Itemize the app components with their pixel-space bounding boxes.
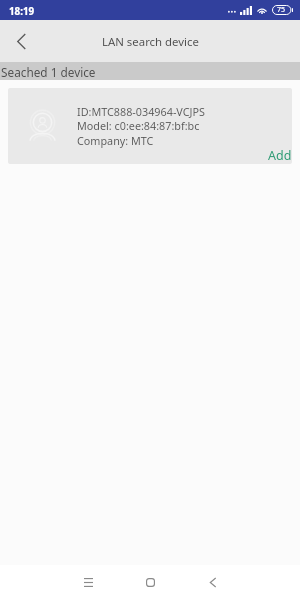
staticText: Add (268, 147, 292, 164)
staticText: 75 (277, 5, 286, 15)
button[interactable]: Add (268, 147, 292, 164)
staticText: Seached 1 device (1, 64, 96, 80)
staticText: Company: MTC (77, 133, 154, 148)
staticText: 18:19 (9, 5, 35, 18)
button[interactable]: ID:MTC888-034964-VCJPS (8, 88, 292, 164)
staticText: ID:MTC888-034964-VCJPS (77, 104, 205, 119)
button[interactable]: Recents (68, 565, 108, 600)
button[interactable]: Home (130, 565, 170, 600)
staticText: Model: c0:ee:84:87:bf:bc (77, 118, 200, 133)
button[interactable]: Back (193, 565, 233, 600)
staticText: LAN search device (102, 34, 199, 50)
button[interactable]: Back (0, 20, 42, 62)
